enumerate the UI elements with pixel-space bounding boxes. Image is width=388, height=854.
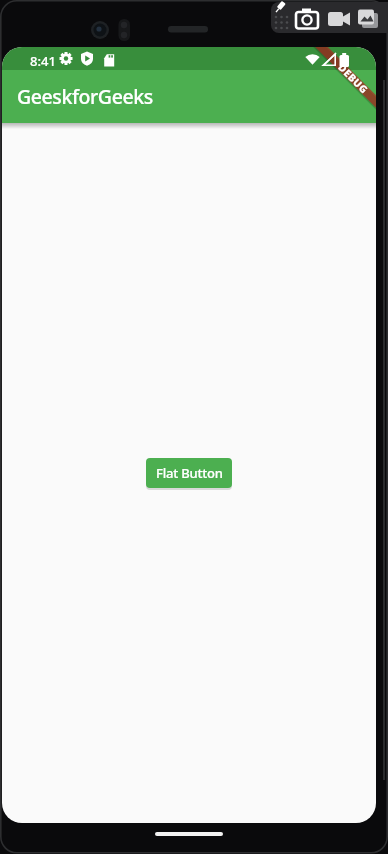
button[interactable]: Flat Button [146,458,232,488]
staticText: GeeskforGeeks [17,83,153,110]
staticText: DEBUG [335,60,371,96]
staticText: 8:41 [30,52,56,70]
staticText: Flat Button [156,464,223,482]
